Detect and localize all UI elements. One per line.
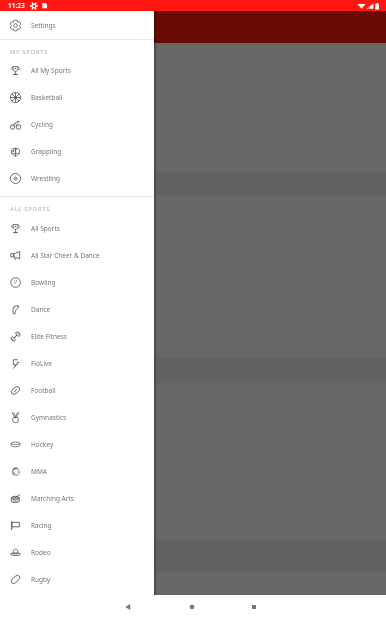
staticText: Grappling xyxy=(31,147,62,156)
button[interactable]: All Sports xyxy=(0,215,154,242)
button[interactable]: Dance xyxy=(0,296,154,323)
button[interactable]: Settings xyxy=(0,12,154,39)
staticText: Racing xyxy=(31,521,52,530)
staticText: Marching Arts xyxy=(31,494,74,503)
staticText: Football xyxy=(31,386,56,395)
staticText: MMA xyxy=(31,467,47,476)
button[interactable]: Racing xyxy=(0,512,154,539)
button[interactable]: All My Sports xyxy=(0,57,154,84)
button[interactable]: Rodeo xyxy=(0,539,154,566)
button[interactable]: Bowling xyxy=(0,269,154,296)
other: Settings status icon xyxy=(30,2,38,10)
staticText: All Sports xyxy=(31,224,60,233)
button[interactable]: All Star Cheer & Dance xyxy=(0,242,154,269)
staticText: Cycling xyxy=(31,120,53,129)
staticText: Elite Fitness xyxy=(31,332,67,341)
staticText: FloLive xyxy=(31,359,53,368)
staticText: All My Sports xyxy=(31,66,71,75)
staticText: Dance xyxy=(31,305,51,314)
button[interactable]: Marching Arts xyxy=(0,485,154,512)
button[interactable]: MMA xyxy=(0,458,154,485)
staticText: Basketball xyxy=(31,93,63,102)
staticText: Wrestling xyxy=(31,174,61,183)
button[interactable]: Cycling xyxy=(0,111,154,138)
button[interactable]: Football xyxy=(0,377,154,404)
button[interactable]: Grappling xyxy=(0,138,154,165)
staticText: Settings xyxy=(31,21,56,30)
staticText: Rodeo xyxy=(31,548,51,557)
staticText: All Star Cheer & Dance xyxy=(31,251,100,260)
button[interactable]: Elite Fitness xyxy=(0,323,154,350)
button[interactable]: Recents xyxy=(243,596,265,618)
button[interactable]: Gymnastics xyxy=(0,404,154,431)
button[interactable]: Hockey xyxy=(0,431,154,458)
button[interactable]: Back xyxy=(117,596,139,618)
staticText: 11:23 xyxy=(8,1,25,10)
staticText: Rugby xyxy=(31,575,51,584)
staticText: Hockey xyxy=(31,440,54,449)
button[interactable]: FloLive xyxy=(0,350,154,377)
button[interactable]: Wrestling xyxy=(0,165,154,192)
button[interactable]: Rugby xyxy=(0,566,154,593)
staticText: Gymnastics xyxy=(31,413,67,422)
staticText: Bowling xyxy=(31,278,56,287)
button[interactable]: Basketball xyxy=(0,84,154,111)
button[interactable]: Home xyxy=(181,596,203,618)
staticText: ALL SPORTS xyxy=(10,205,51,213)
staticText: MY SPORTS xyxy=(10,48,49,56)
